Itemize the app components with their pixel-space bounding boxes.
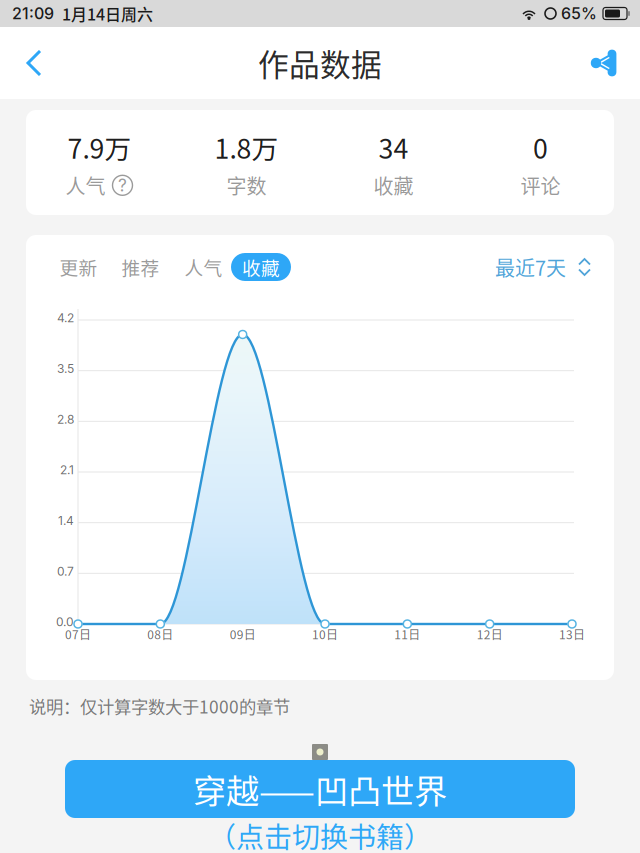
staticText: 12日: [477, 625, 503, 643]
staticText: 21:09: [12, 4, 54, 23]
button[interactable]: 最近7天: [495, 253, 591, 281]
staticText: 穿越——凹凸世界: [193, 765, 447, 813]
staticText: 09日: [230, 625, 256, 643]
staticText: 2.8: [57, 412, 74, 427]
staticText: 人气: [184, 253, 222, 280]
button[interactable]: 推荐: [121, 253, 160, 281]
button[interactable]: 返回: [6, 32, 62, 94]
button[interactable]: 穿越——凹凸世界: [65, 760, 575, 818]
staticText: 0.7: [57, 564, 74, 579]
staticText: 3.5: [57, 361, 74, 376]
button[interactable]: 分享: [574, 32, 634, 94]
staticText: 1月14日周六: [54, 2, 153, 25]
button[interactable]: 更新: [59, 253, 98, 281]
staticText: 0.0: [56, 615, 74, 629]
staticText: 10日: [312, 625, 338, 643]
button[interactable]: 人气: [184, 253, 223, 281]
staticText: 更新: [59, 253, 97, 280]
staticText: 34: [378, 128, 408, 166]
staticText: （点击切换书籍）: [208, 815, 432, 853]
staticText: 4.2: [57, 311, 74, 325]
staticText: 7.9万: [67, 128, 131, 166]
staticText: 字数: [226, 171, 266, 200]
staticText: 11日: [394, 625, 420, 643]
staticText: 收藏: [242, 253, 280, 280]
staticText: 说明：仅计算字数大于1000的章节: [29, 693, 290, 719]
button[interactable]: （点击切换书籍）: [208, 818, 432, 853]
staticText: 08日: [147, 625, 173, 643]
staticText: 07日: [65, 625, 91, 643]
staticText: 1.8万: [214, 128, 278, 166]
staticText: 作品数据: [258, 41, 382, 85]
staticText: 收藏: [373, 171, 413, 200]
staticText: 0: [533, 128, 548, 166]
staticText: 2.1: [60, 463, 74, 477]
staticText: 评论: [520, 171, 560, 200]
staticText: 13日: [559, 625, 585, 643]
staticText: [538, 0, 544, 28]
button[interactable]: 收藏: [231, 253, 291, 281]
staticText: 1.4: [58, 513, 74, 528]
staticText: ?: [118, 175, 127, 196]
staticText: 人气: [65, 171, 105, 200]
staticText: [597, 0, 603, 28]
staticText: 65%: [557, 4, 597, 23]
staticText: 推荐: [121, 253, 159, 280]
staticText: 最近7天: [495, 252, 566, 281]
